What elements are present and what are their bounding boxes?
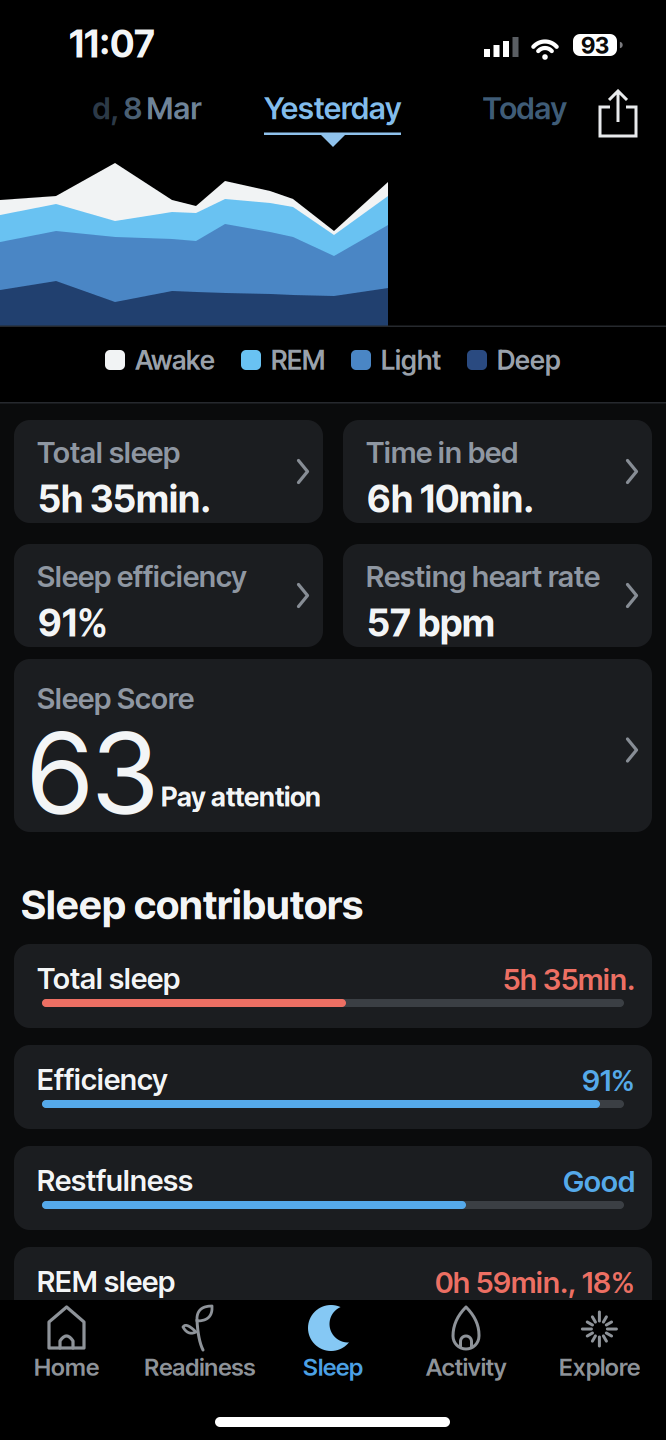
staticText: Good bbox=[563, 1164, 635, 1199]
staticText: 5h 35min. bbox=[38, 477, 211, 521]
staticText: Restfulness bbox=[37, 1163, 193, 1198]
staticText: 63 bbox=[28, 707, 158, 839]
staticText: 93 bbox=[581, 32, 609, 59]
staticText: Awake bbox=[135, 344, 215, 376]
staticText: Resting heart rate bbox=[366, 559, 600, 594]
staticText: Activity bbox=[426, 1353, 507, 1381]
staticText: Readiness bbox=[144, 1353, 255, 1381]
staticText: 6h 10min. bbox=[367, 477, 534, 521]
staticText: Sleep contributors bbox=[21, 881, 363, 928]
staticText: Pay attention bbox=[161, 781, 321, 812]
staticText: Sleep bbox=[303, 1353, 363, 1381]
staticText: Sleep efficiency bbox=[37, 559, 247, 594]
staticText: Mar bbox=[146, 90, 201, 126]
staticText: Explore bbox=[559, 1353, 640, 1381]
staticText: 11:07 bbox=[69, 22, 155, 66]
staticText: d, bbox=[92, 90, 119, 126]
staticText: Sleep Score bbox=[37, 681, 194, 716]
staticText: 91% bbox=[582, 1063, 635, 1098]
staticText: 91% bbox=[38, 601, 108, 645]
staticText: Light bbox=[381, 344, 441, 376]
staticText: Total sleep bbox=[37, 961, 180, 996]
staticText: REM bbox=[271, 344, 325, 376]
staticText: 8 bbox=[123, 90, 142, 126]
staticText: 57 bpm bbox=[367, 601, 495, 645]
staticText: Efficiency bbox=[37, 1062, 168, 1097]
staticText: 0h 59min., 18% bbox=[435, 1265, 635, 1300]
staticText: 5h 35min. bbox=[503, 962, 635, 997]
staticText: Deep bbox=[497, 344, 561, 376]
staticText: Time in bed bbox=[366, 435, 518, 470]
staticText: Total sleep bbox=[37, 435, 180, 470]
staticText: REM sleep bbox=[37, 1264, 175, 1299]
staticText: Today bbox=[482, 90, 567, 126]
staticText: Home bbox=[34, 1353, 99, 1381]
staticText: Yesterday bbox=[264, 90, 402, 126]
